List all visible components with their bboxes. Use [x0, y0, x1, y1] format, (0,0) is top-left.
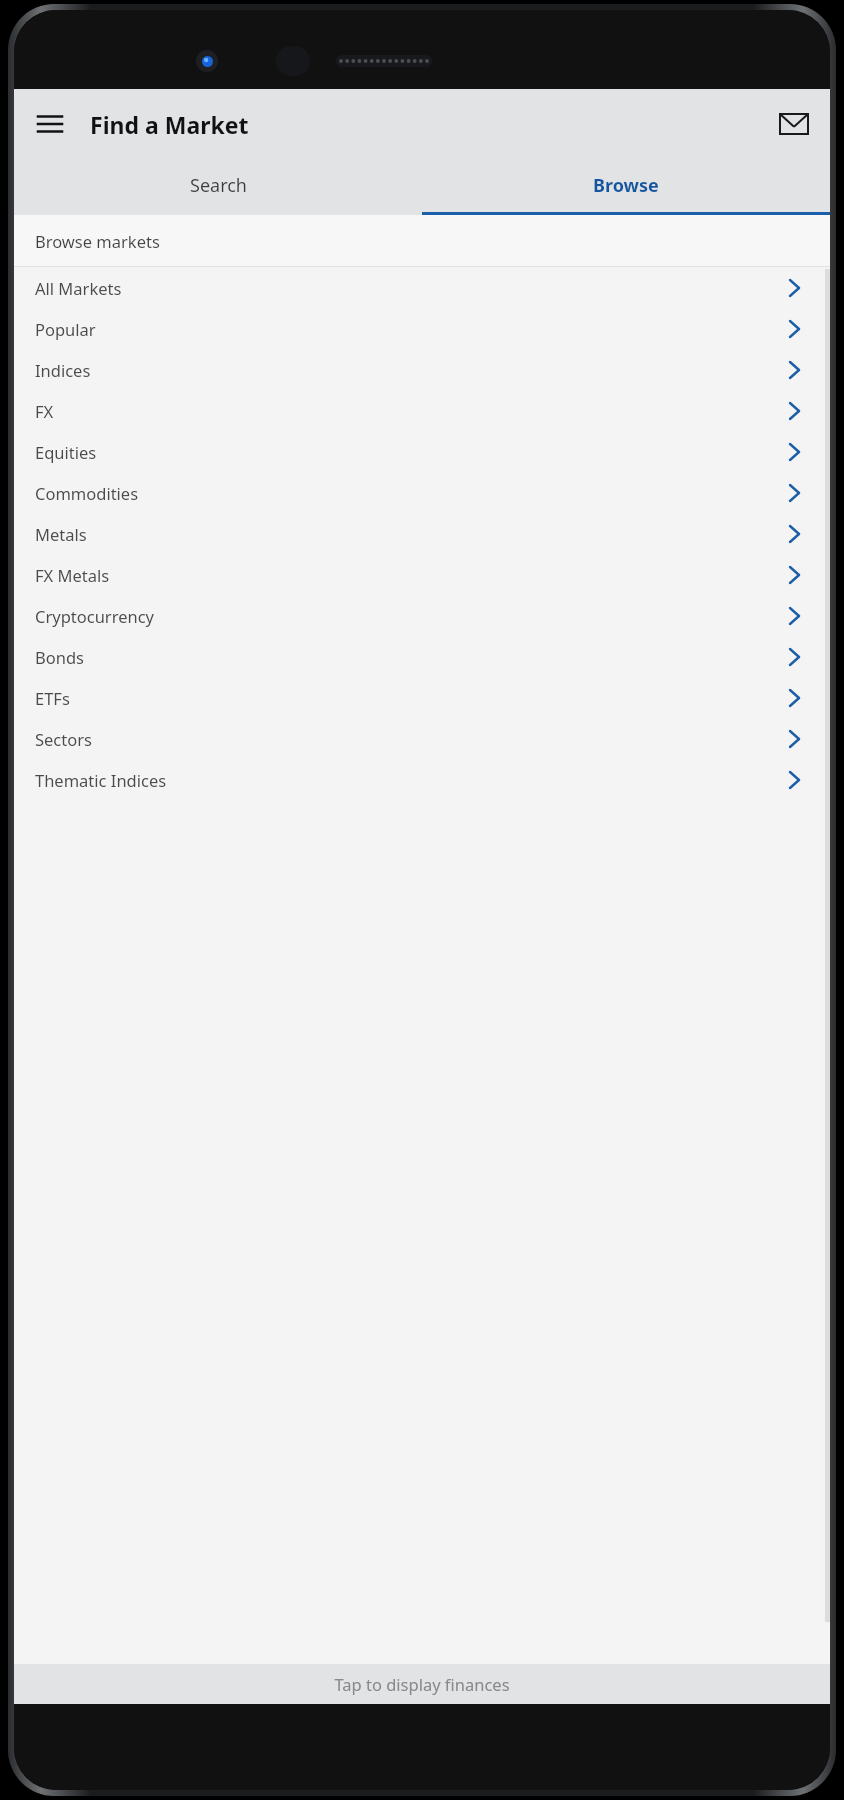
button[interactable]: Browse [422, 159, 830, 212]
button[interactable]: Messages [770, 100, 818, 148]
button[interactable]: Tap to display finances [14, 1664, 830, 1704]
staticText: Thematic Indices [35, 769, 789, 791]
staticText: ETFs [35, 687, 789, 709]
staticText: Indices [35, 359, 789, 381]
staticText: All Markets [35, 277, 789, 299]
button[interactable]: Search [14, 159, 422, 212]
button[interactable]: ETFs [14, 677, 830, 718]
button[interactable]: Equities [14, 431, 830, 472]
staticText: Bonds [35, 646, 789, 668]
staticText: Equities [35, 441, 789, 463]
button[interactable]: Metals [14, 513, 830, 554]
staticText: Popular [35, 318, 789, 340]
button[interactable]: Commodities [14, 472, 830, 513]
staticText: Sectors [35, 728, 789, 750]
staticText: Cryptocurrency [35, 605, 789, 627]
staticText: Metals [35, 523, 789, 545]
staticText: Tap to display finances [334, 1673, 510, 1695]
staticText: Commodities [35, 482, 789, 504]
staticText: FX Metals [35, 564, 789, 586]
button[interactable]: Cryptocurrency [14, 595, 830, 636]
staticText: Browse markets [35, 230, 160, 252]
button[interactable]: Thematic Indices [14, 759, 830, 800]
staticText: FX [35, 400, 789, 422]
staticText: Browse [593, 173, 659, 198]
button[interactable]: All Markets [14, 267, 830, 308]
button[interactable]: FX [14, 390, 830, 431]
button[interactable]: Open navigation menu [26, 100, 74, 148]
button[interactable]: Popular [14, 308, 830, 349]
button[interactable]: FX Metals [14, 554, 830, 595]
staticText: Find a Market [90, 109, 249, 140]
button[interactable]: Sectors [14, 718, 830, 759]
button[interactable]: Indices [14, 349, 830, 390]
staticText: Search [190, 173, 247, 198]
button[interactable]: Bonds [14, 636, 830, 677]
